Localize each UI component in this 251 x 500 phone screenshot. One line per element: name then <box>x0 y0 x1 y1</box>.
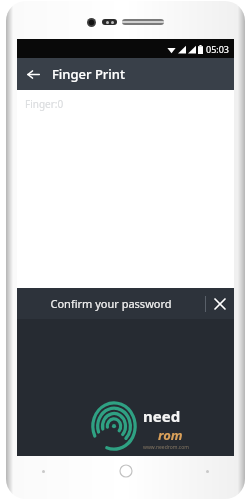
button[interactable]: Recent apps <box>42 470 45 473</box>
staticText: Confirm your password <box>50 296 172 311</box>
staticText: www.needrom.com <box>143 444 189 451</box>
button[interactable]: Back <box>206 470 209 473</box>
button[interactable]: Back <box>22 63 44 85</box>
staticText: Finger Print <box>52 65 125 83</box>
button[interactable]: Close <box>206 288 234 319</box>
staticText: Finger:0 <box>25 97 64 111</box>
staticText: need <box>143 406 181 426</box>
button[interactable]: Home <box>119 464 133 478</box>
staticText: rom <box>158 426 183 444</box>
button[interactable]: Confirm your password <box>17 288 205 319</box>
staticText: 05:03 <box>206 43 230 55</box>
